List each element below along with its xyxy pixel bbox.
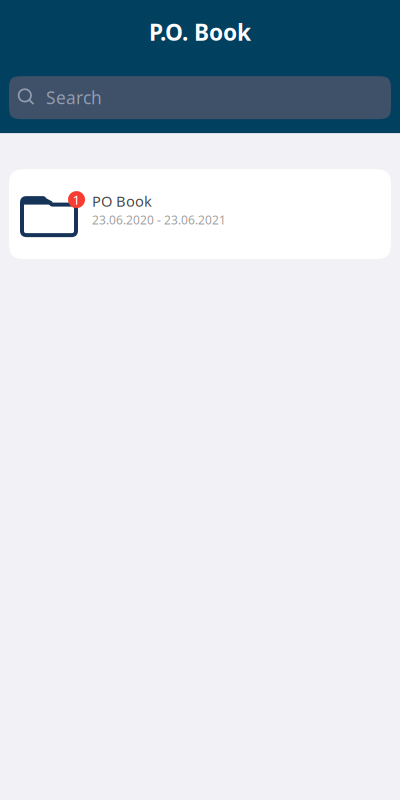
staticText: PO Book <box>92 191 152 211</box>
button[interactable]: PO Book, 23.06.2020 - 23.06.2021, 1 item <box>9 169 391 259</box>
button[interactable]: Search <box>9 76 391 119</box>
staticText: 1 <box>72 191 80 208</box>
staticText: Search <box>46 86 102 109</box>
staticText: P.O. Book <box>149 17 251 47</box>
staticText: 23.06.2020 - 23.06.2021 <box>92 212 226 228</box>
